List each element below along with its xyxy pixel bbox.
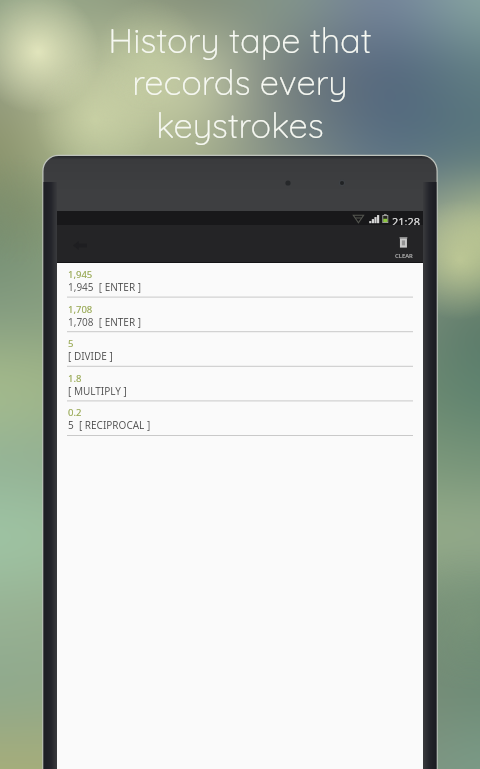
staticText: 0.2 — [68, 406, 82, 419]
staticText: History tape that records every keystrok… — [108, 18, 372, 147]
staticText: 21:28 — [392, 214, 421, 228]
staticText: 1,708 — [68, 303, 93, 316]
staticText: [ MULTIPLY ] — [68, 384, 127, 398]
staticText: 1,945 — [68, 268, 93, 281]
staticText: 1,708 [ ENTER ] — [68, 315, 142, 329]
button[interactable]: 5 — [57, 332, 423, 367]
button[interactable]: 0.2 — [57, 401, 423, 436]
button[interactable]: 1.8 — [57, 367, 423, 402]
staticText: 1,945 [ ENTER ] — [68, 280, 142, 294]
button[interactable]: Clear history — [386, 226, 420, 262]
button[interactable]: 1,708 — [57, 298, 423, 333]
staticText: 5 — [68, 337, 74, 350]
button[interactable]: 1,945 — [57, 263, 423, 298]
staticText: 1.8 — [68, 372, 82, 385]
staticText: CLEAR — [395, 252, 413, 260]
staticText: [ DIVIDE ] — [68, 349, 113, 363]
staticText: 5 [ RECIPROCAL ] — [68, 418, 151, 432]
